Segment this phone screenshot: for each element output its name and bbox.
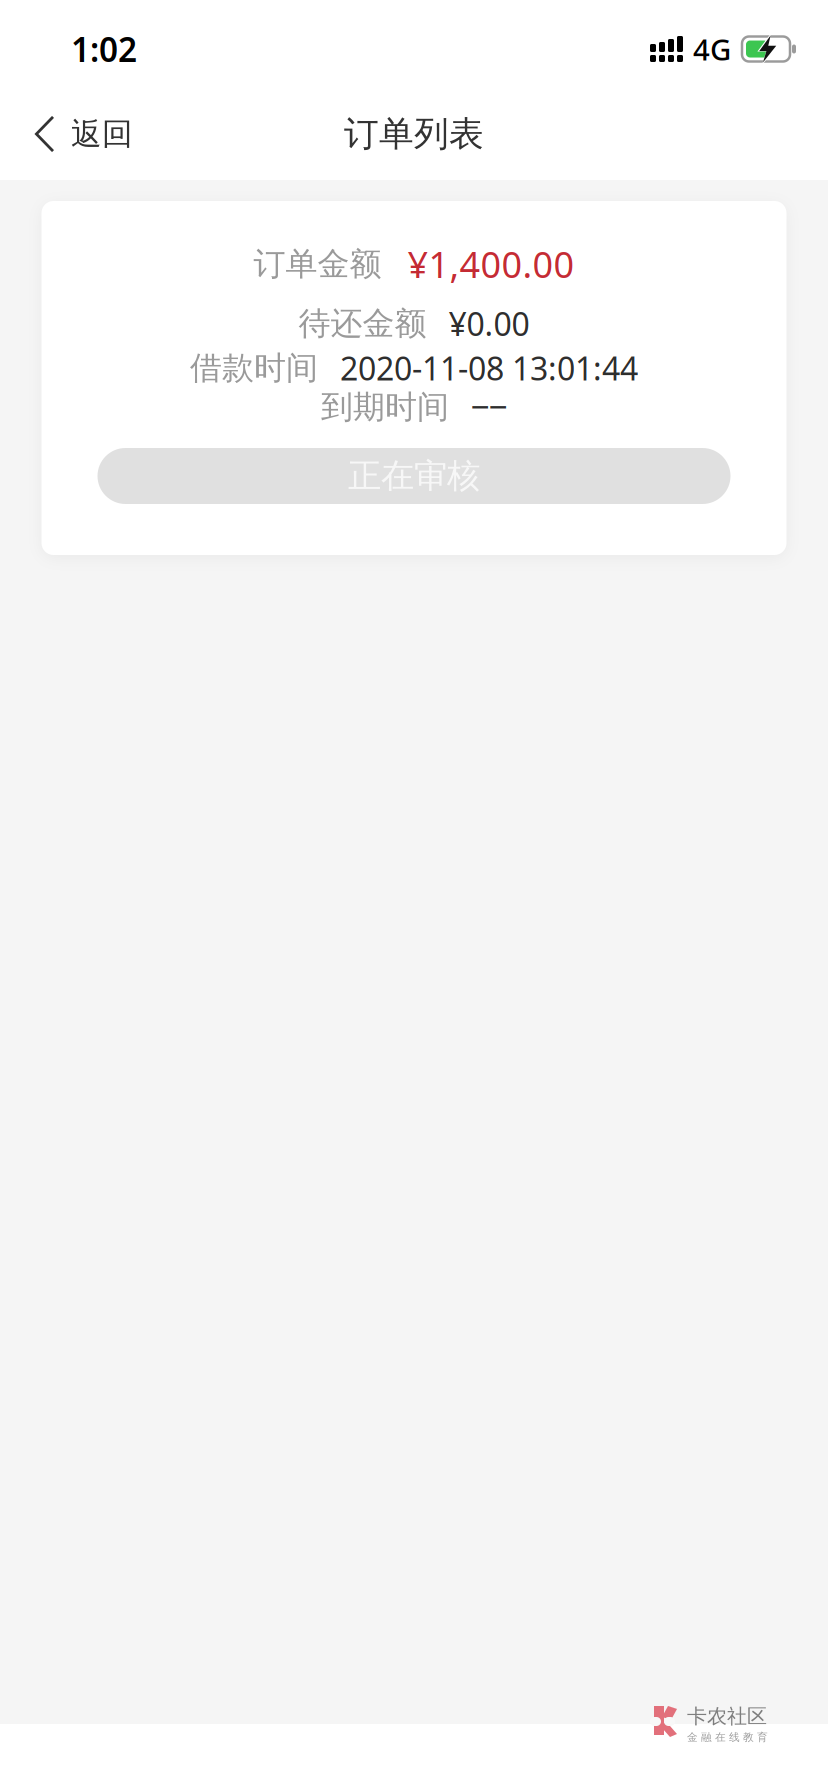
staticText: 返回 xyxy=(71,115,133,153)
staticText: 待还金额 xyxy=(298,304,426,343)
button[interactable]: 订单金额 xyxy=(41,201,786,555)
staticText: 订单列表 xyxy=(344,113,484,155)
staticText: 卡农社区 xyxy=(687,1704,767,1729)
staticText: 1:02 xyxy=(71,27,137,71)
staticText: 借款时间 xyxy=(190,348,318,388)
staticText: 正在审核 xyxy=(348,455,480,496)
staticText: ¥0.00 xyxy=(448,302,529,345)
button[interactable]: 返回 xyxy=(0,88,157,180)
staticText: 4G xyxy=(693,29,731,68)
staticText: 订单金额 xyxy=(253,244,381,284)
button[interactable]: 正在审核 xyxy=(97,448,730,504)
staticText: ¥1,400.00 xyxy=(407,240,574,288)
staticText: 金 融 在 线 教 育 xyxy=(687,1731,768,1744)
staticText: 到期时间 xyxy=(321,387,449,427)
staticText: 2020-11-08 13:01:44 xyxy=(340,347,638,389)
staticText: ‒‒ xyxy=(471,386,507,428)
